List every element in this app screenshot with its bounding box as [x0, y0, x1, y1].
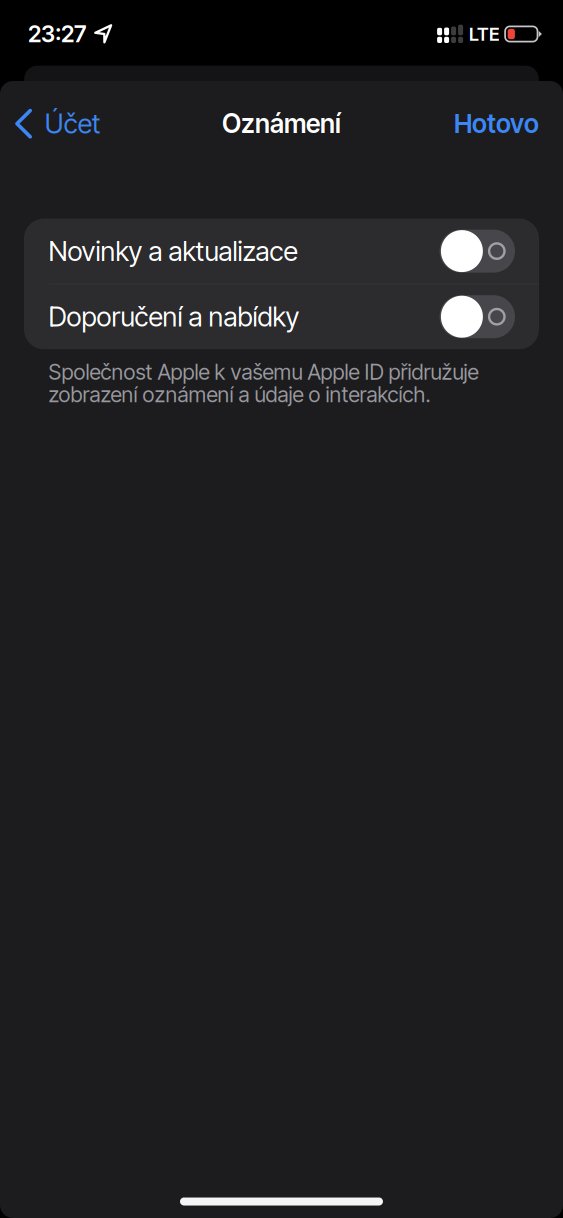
staticText: zobrazení oznámení a údaje o interakcích…: [49, 382, 431, 407]
staticText: Novinky a aktualizace: [49, 235, 298, 267]
button[interactable]: Účet: [0, 99, 111, 148]
staticText: Účet: [45, 107, 101, 140]
staticText: 23:27: [28, 20, 86, 48]
staticText: LTE: [469, 23, 500, 45]
button[interactable]: Hotovo: [442, 100, 563, 147]
staticText: Doporučení a nabídky: [49, 300, 300, 333]
staticText: Společnost Apple k vašemu Apple ID přidr…: [49, 359, 479, 385]
button[interactable]: Novinky a aktualizace: [24, 219, 539, 284]
staticText: Oznámení: [222, 108, 341, 139]
button[interactable]: Doporučení a nabídky: [24, 284, 539, 349]
staticText: Hotovo: [454, 108, 539, 139]
